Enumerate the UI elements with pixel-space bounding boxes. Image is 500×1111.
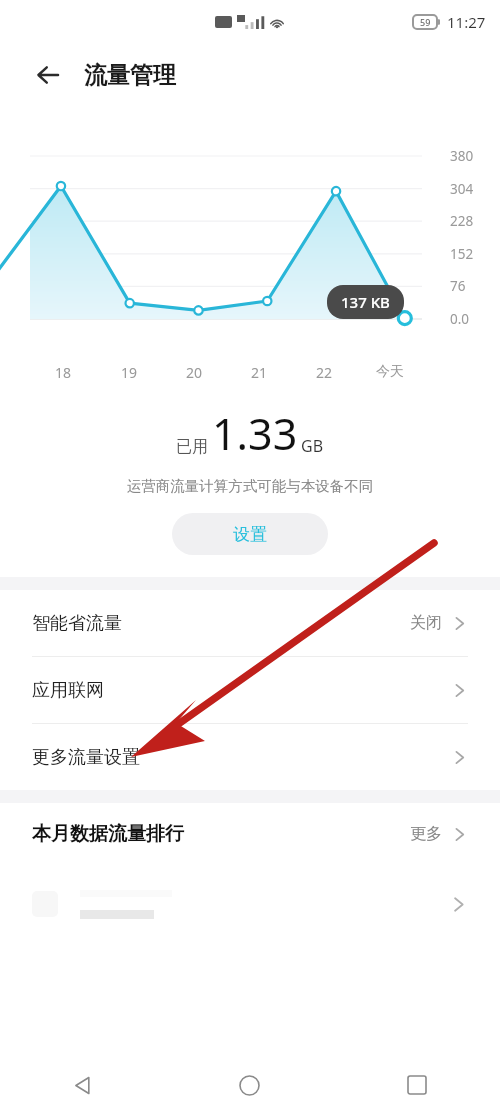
staticText: 228 bbox=[450, 212, 474, 230]
staticText: 137 KB bbox=[341, 292, 390, 312]
staticText: 380 bbox=[450, 147, 474, 165]
button[interactable]: 设置 bbox=[172, 513, 328, 555]
button[interactable]: Recents bbox=[333, 1059, 500, 1111]
button[interactable]: Home bbox=[166, 1059, 333, 1111]
staticText: 22 bbox=[316, 363, 333, 382]
staticText: 18 bbox=[55, 363, 72, 382]
button[interactable]: 本月数据流量排行 bbox=[0, 803, 500, 865]
button[interactable]: 智能省流量 bbox=[0, 590, 500, 657]
staticText: 1.33 bbox=[212, 404, 298, 463]
staticText: 应用联网 bbox=[32, 679, 104, 702]
staticText: 304 bbox=[450, 180, 474, 198]
staticText: 流量管理 bbox=[84, 61, 176, 90]
button[interactable]: 更多流量设置 bbox=[0, 724, 500, 790]
staticText: 设置 bbox=[233, 524, 267, 545]
staticText: 20 bbox=[186, 363, 203, 382]
staticText: 19 bbox=[121, 363, 138, 382]
button[interactable]: Back bbox=[0, 1059, 166, 1111]
staticText: 更多 bbox=[410, 824, 442, 844]
staticText: GB bbox=[301, 435, 324, 457]
staticText: 本月数据流量排行 bbox=[32, 822, 184, 846]
staticText: 已用 bbox=[176, 437, 208, 457]
staticText: 更多流量设置 bbox=[32, 746, 140, 769]
staticText: 智能省流量 bbox=[32, 612, 122, 635]
staticText: 关闭 bbox=[410, 613, 442, 633]
staticText: 76 bbox=[450, 277, 466, 295]
button[interactable] bbox=[0, 865, 500, 943]
staticText: 今天 bbox=[376, 363, 404, 381]
staticText: 21 bbox=[251, 363, 268, 382]
button[interactable]: Back bbox=[28, 55, 68, 95]
staticText: 152 bbox=[450, 245, 474, 263]
staticText: 运营商流量计算方式可能与本设备不同 bbox=[0, 477, 500, 495]
staticText: 11:27 bbox=[447, 12, 486, 32]
staticText: 0.0 bbox=[450, 310, 470, 328]
button[interactable]: 应用联网 bbox=[0, 657, 500, 724]
staticText: 59 bbox=[420, 16, 431, 28]
